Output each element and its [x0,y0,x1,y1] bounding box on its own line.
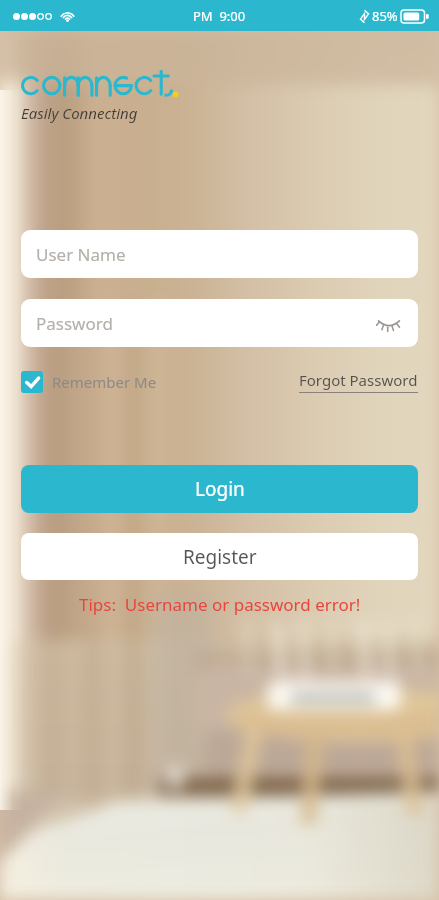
button[interactable]: Show password [374,308,404,338]
staticText: Forgot Password [299,370,418,390]
staticText: Login [195,476,245,502]
staticText: Password [36,312,113,335]
staticText: Remember Me [52,372,157,392]
staticText: Tips: Username or password error! [79,593,361,616]
staticText: Register [183,544,257,570]
staticText: 85% [372,7,398,25]
button[interactable]: User Name [21,230,418,278]
staticText: User Name [36,243,126,266]
staticText: Easily Connecting [21,103,138,123]
button[interactable]: Forgot Password [299,370,418,393]
staticText: PM 9:00 [193,7,246,25]
button[interactable]: Password [21,299,418,347]
button[interactable]: Remember Me [21,371,157,393]
button[interactable]: Register [21,533,418,580]
button[interactable]: Login [21,465,418,513]
